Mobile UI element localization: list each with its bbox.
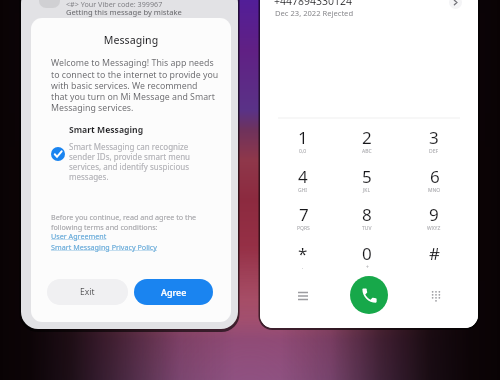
staticText: 3 xyxy=(429,126,439,149)
staticText: Dec 23, 2022 Rejected xyxy=(275,8,354,18)
staticText: 0,0 xyxy=(299,148,307,155)
staticText: Welcome to Messaging! This app needs to … xyxy=(51,57,219,113)
staticText: MNO xyxy=(428,187,441,194)
staticText: 9 xyxy=(429,203,439,226)
staticText: # xyxy=(429,242,440,265)
button[interactable]: Smart Messaging enabled xyxy=(51,147,65,161)
button[interactable]: User Agreement xyxy=(51,231,107,241)
staticText: Smart Messaging xyxy=(69,124,144,136)
button[interactable]: 1 xyxy=(281,122,325,158)
staticText: Exit xyxy=(80,286,95,298)
staticText: Messaging xyxy=(31,33,231,47)
staticText: 8 xyxy=(362,203,372,226)
staticText: 7 xyxy=(299,203,309,226)
button[interactable]: Call details xyxy=(449,0,462,9)
button[interactable]: 9 xyxy=(412,199,456,235)
staticText: + xyxy=(366,264,369,271)
staticText: 6 xyxy=(430,165,440,188)
button[interactable]: 5 xyxy=(345,161,389,197)
staticText: 5 xyxy=(362,165,372,188)
staticText: WXYZ xyxy=(427,225,441,232)
staticText: 1 xyxy=(298,126,308,149)
button[interactable]: More options xyxy=(283,278,323,314)
button[interactable]: 6 xyxy=(412,161,456,197)
button[interactable]: 8 xyxy=(345,199,389,235)
button[interactable]: * xyxy=(281,238,325,274)
staticText: <#> Your Viber code: 399967 xyxy=(66,0,163,9)
button[interactable]: Call xyxy=(350,276,388,314)
button[interactable]: Smart Messaging Privacy Policy xyxy=(51,242,157,252)
staticText: TUV xyxy=(362,225,372,232)
button[interactable]: 2 xyxy=(345,122,389,158)
staticText: Before you continue, read and agree to t… xyxy=(51,212,197,232)
button[interactable]: Keypad xyxy=(416,278,456,314)
staticText: * xyxy=(298,242,308,265)
staticText: Smart Messaging can recognize sender IDs… xyxy=(69,141,191,182)
staticText: 0 xyxy=(362,242,372,265)
button[interactable]: # xyxy=(412,238,456,274)
staticText: 4 xyxy=(298,165,308,188)
button[interactable]: Agree xyxy=(134,279,213,305)
staticText: GHI xyxy=(298,187,308,194)
staticText: PQRS xyxy=(297,225,310,232)
staticText: Getting this message by mistake xyxy=(66,7,182,17)
staticText: Agree xyxy=(161,286,187,298)
staticText: 2 xyxy=(362,126,372,149)
staticText: . xyxy=(302,264,304,271)
staticText: DEF xyxy=(429,148,439,155)
staticText: ABC xyxy=(362,148,372,155)
staticText: +447894330124 xyxy=(274,0,353,8)
button[interactable]: 4 xyxy=(281,161,325,197)
button[interactable]: 3 xyxy=(412,122,456,158)
button[interactable]: 0 xyxy=(345,238,389,274)
staticText: JKL xyxy=(363,187,371,194)
button[interactable]: Exit xyxy=(47,279,128,305)
button[interactable]: 7 xyxy=(281,199,325,235)
